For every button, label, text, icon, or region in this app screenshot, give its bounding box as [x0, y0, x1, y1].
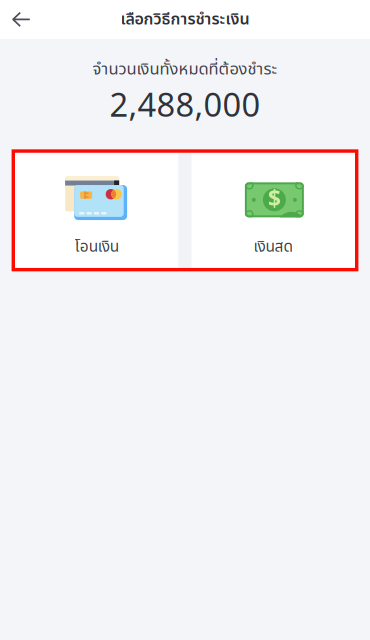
button[interactable]: โอนเงิน — [15, 152, 178, 268]
button[interactable]: Back — [0, 0, 42, 39]
staticText: 2,488,000 — [109, 82, 260, 131]
staticText: จำนวนเงินทั้งหมดที่ต้องชำระ — [92, 57, 277, 82]
staticText: เงินสด — [253, 235, 293, 259]
staticText: เลือกวิธีการชำระเงิน — [120, 7, 249, 32]
staticText: โอนเงิน — [75, 235, 119, 259]
button[interactable]: $ — [192, 152, 355, 268]
staticText: $ — [268, 183, 281, 217]
